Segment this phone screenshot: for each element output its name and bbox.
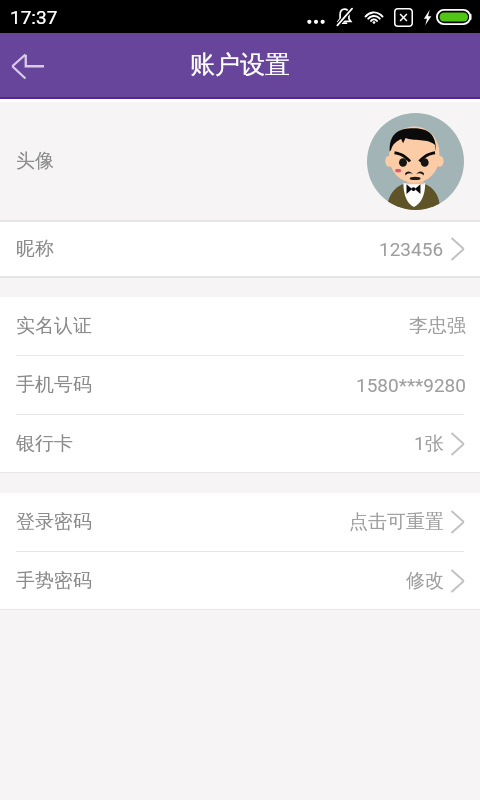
staticText: 17:37 [10, 6, 58, 28]
staticText: 头像 [16, 149, 54, 173]
staticText: 修改 [406, 569, 444, 593]
staticText: 1张 [414, 432, 444, 456]
button[interactable]: 银行卡 [0, 415, 480, 472]
staticText: 账户设置 [190, 49, 290, 80]
staticText: 银行卡 [16, 432, 73, 456]
staticText: 昵称 [16, 237, 54, 261]
button[interactable]: 昵称 [0, 222, 480, 276]
staticText: 1580***9280 [356, 374, 466, 396]
staticText: 点击可重置 [349, 510, 444, 534]
staticText: 手势密码 [16, 569, 92, 593]
staticText: 手机号码 [16, 373, 92, 397]
button[interactable]: 手势密码 [0, 552, 480, 609]
button[interactable]: 头像 [0, 102, 480, 220]
staticText: 登录密码 [16, 510, 92, 534]
button[interactable]: 手机号码 [0, 356, 480, 415]
button[interactable]: Back [0, 38, 55, 93]
staticText: 123456 [379, 238, 444, 260]
staticText: 李忠强 [409, 314, 466, 338]
button[interactable]: 实名认证 [0, 297, 480, 356]
staticText: 实名认证 [16, 314, 92, 338]
button[interactable]: 登录密码 [0, 493, 480, 552]
